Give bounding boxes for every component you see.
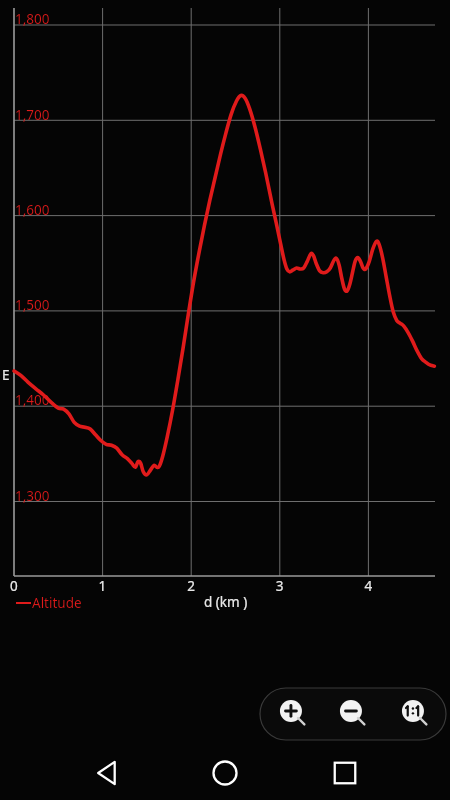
button[interactable]: Zoom out (337, 697, 371, 731)
button[interactable]: Zoom in (277, 697, 311, 731)
button[interactable]: Reset zoom to 1:1 (399, 697, 433, 731)
button[interactable]: Back (78, 755, 138, 791)
button[interactable]: Home (195, 755, 255, 791)
button[interactable]: Recent apps (315, 755, 375, 791)
